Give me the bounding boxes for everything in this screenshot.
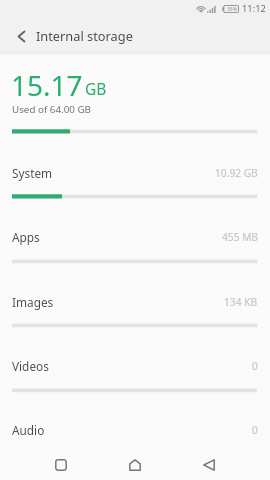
staticText: 36% [227, 6, 237, 13]
staticText: Audio [12, 422, 45, 438]
button[interactable] [0, 414, 270, 448]
staticText: System [12, 165, 53, 181]
button[interactable]: Back [185, 444, 232, 480]
button[interactable] [0, 286, 270, 320]
staticText: GB [85, 78, 107, 99]
staticText: Videos [12, 358, 49, 374]
staticText: 455 MB [222, 230, 258, 244]
button[interactable]: Back [5, 19, 37, 53]
staticText: Internal storage [36, 27, 133, 44]
staticText: 0 [252, 423, 258, 437]
staticText: Used of 64.00 GB [12, 103, 91, 116]
staticText: Images [12, 294, 54, 310]
button[interactable] [0, 157, 270, 191]
staticText: 10.92 GB [215, 166, 258, 180]
staticText: Apps [12, 229, 40, 245]
staticText: 0 [252, 359, 258, 373]
button[interactable]: Home [111, 444, 158, 480]
staticText: 134 KB [224, 295, 258, 309]
button[interactable]: Recent apps [37, 444, 84, 480]
button[interactable] [0, 350, 270, 384]
staticText: 11:12 [242, 2, 266, 15]
staticText: 15.17 [11, 66, 83, 104]
button[interactable] [0, 221, 270, 255]
